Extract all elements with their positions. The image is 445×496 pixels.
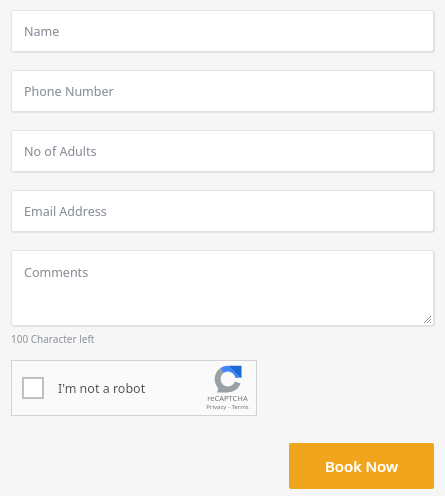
staticText: I'm not a robot [58,380,146,397]
staticText: 100 Character left [11,332,95,346]
button[interactable]: Comments [11,250,434,326]
staticText: Email Address [24,203,107,220]
button[interactable]: I'm not a robot checkbox [22,377,44,399]
staticText: Book Now [325,456,399,476]
staticText: No of Adults [24,143,97,160]
button[interactable]: No of Adults [11,130,434,172]
button[interactable]: Book Now [289,443,434,489]
button[interactable]: Name [11,10,434,52]
button[interactable]: I'm not a robot checkbox [11,360,257,416]
staticText: Phone Number [24,83,114,100]
staticText: Privacy - Terms [206,403,249,411]
button[interactable]: Email Address [11,190,434,232]
staticText: Name [24,23,60,40]
staticText: reCAPTCHA [207,393,248,403]
button[interactable]: Phone Number [11,70,434,112]
staticText: Comments [24,264,89,281]
